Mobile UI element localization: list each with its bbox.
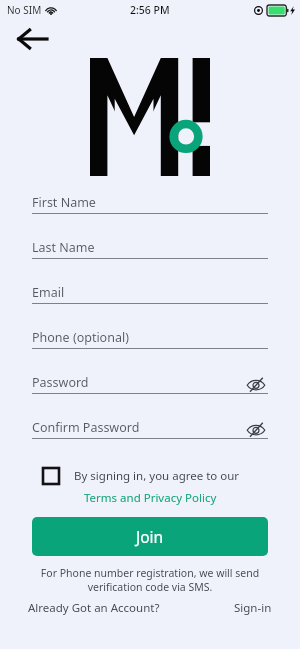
button[interactable]: Already Got an Account? (28, 594, 160, 622)
staticText: No SIM (7, 3, 42, 17)
button[interactable]: Phone (optional) (32, 319, 268, 349)
staticText: Phone (optional) (32, 329, 129, 346)
staticText: Confirm Password (32, 419, 140, 436)
button[interactable]: Password (32, 364, 268, 394)
button[interactable]: Join (32, 517, 268, 556)
button[interactable]: Last Name (32, 229, 268, 259)
staticText: Last Name (32, 239, 95, 256)
button[interactable]: Back (10, 22, 54, 56)
staticText: Email (32, 284, 65, 301)
staticText: For Phone number registration, we will s… (26, 566, 274, 594)
staticText: Terms and Privacy Policy (84, 490, 217, 506)
staticText: First Name (32, 194, 96, 211)
staticText: 2:56 PM (130, 3, 170, 17)
staticText: Sign-in (234, 600, 272, 616)
staticText: By signing in, you agree to our (74, 468, 240, 484)
button[interactable]: Show password (244, 375, 268, 393)
button[interactable]: Terms and Privacy Policy (80, 489, 221, 507)
staticText: Password (32, 374, 89, 391)
button[interactable]: Sign-in (234, 594, 272, 622)
button[interactable]: First Name (32, 184, 268, 214)
button[interactable]: Show password (244, 420, 268, 438)
staticText: Join (136, 526, 164, 547)
button[interactable]: Confirm Password (32, 409, 268, 439)
staticText: Already Got an Account? (28, 600, 160, 616)
button[interactable] (40, 465, 62, 487)
button[interactable]: Email (32, 274, 268, 304)
